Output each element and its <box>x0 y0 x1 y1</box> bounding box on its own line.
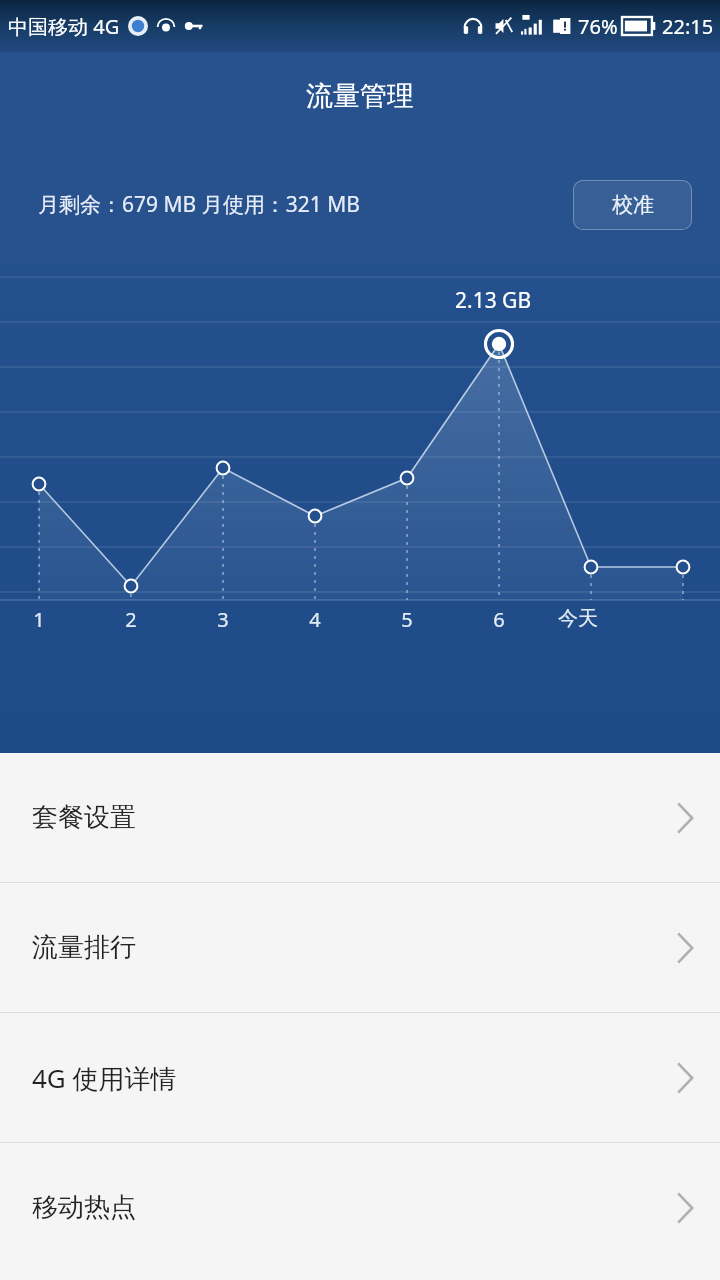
other: 打开 流量排行 <box>676 932 694 964</box>
staticText: 6 <box>475 606 523 633</box>
staticText: 2 <box>107 606 155 633</box>
staticText: 22:15 <box>662 13 714 40</box>
button[interactable]: 移动热点 <box>0 1143 720 1272</box>
button[interactable]: 校准 <box>573 180 692 230</box>
staticText: 今天 <box>554 606 602 631</box>
staticText: 4 <box>291 606 339 633</box>
staticText: 中国移动 4G <box>8 13 120 40</box>
staticText: 1 <box>15 606 63 633</box>
staticText: 流量管理 <box>306 79 414 113</box>
staticText: 3 <box>199 606 247 633</box>
staticText: 月剩余：679 MB 月使用：321 MB <box>38 190 360 219</box>
button[interactable]: 流量排行 <box>0 883 720 1012</box>
staticText: 套餐设置 <box>32 801 136 834</box>
staticText: 4G 使用详情 <box>32 1060 177 1096</box>
staticText: 2.13 GB <box>455 286 532 315</box>
other: 打开 套餐设置 <box>676 802 694 834</box>
staticText: 流量排行 <box>32 931 136 964</box>
button[interactable]: 4G 使用详情 <box>0 1013 720 1142</box>
button[interactable]: 套餐设置 <box>0 753 720 882</box>
staticText: 校准 <box>612 192 654 218</box>
staticText: 移动热点 <box>32 1191 136 1224</box>
staticText: 5 <box>383 606 431 633</box>
other: 打开 4G 使用详情 <box>676 1062 694 1094</box>
staticText: 76% <box>578 13 618 40</box>
other: 打开 移动热点 <box>676 1192 694 1224</box>
